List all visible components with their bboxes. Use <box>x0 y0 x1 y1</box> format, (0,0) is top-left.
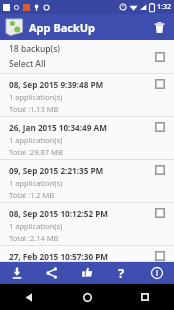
button[interactable]: Rate app <box>69 262 104 284</box>
button[interactable]: 26, Jan 2015 10:34:49 AM <box>0 117 174 160</box>
button[interactable]: Help <box>104 262 139 284</box>
staticText: 26, Jan 2015 10:34:49 AM <box>9 122 107 133</box>
staticText: ? <box>118 264 125 282</box>
button[interactable]: 09, Sep 2015 2:21:35 PM <box>0 160 174 203</box>
staticText: Total :2.14 MB <box>9 233 59 243</box>
staticText: 1 application(s) <box>9 221 63 231</box>
staticText: 09, Sep 2015 2:21:35 PM <box>9 165 104 176</box>
button[interactable]: Delete backups <box>148 16 170 38</box>
button[interactable]: Back <box>0 284 58 310</box>
staticText: 1:32 <box>157 2 171 12</box>
staticText: App BackUp <box>29 20 96 35</box>
button[interactable]: Home <box>58 284 116 310</box>
staticText: Total :1.2 MB <box>9 190 55 200</box>
button[interactable]: 27, Feb 2015 10:57:30 PM <box>0 246 174 262</box>
button[interactable]: Backup now <box>0 262 34 284</box>
staticText: 08, Sep 2015 10:12:52 PM <box>9 208 109 219</box>
button[interactable]: Recent apps <box>116 284 174 310</box>
staticText: Select All <box>9 58 46 70</box>
button[interactable]: 08, Sep 2015 9:39:48 PM <box>0 74 174 117</box>
staticText: Total :1.13 MB <box>9 104 59 114</box>
staticText: 18 backup(s) <box>9 43 61 55</box>
button[interactable]: About <box>139 262 174 284</box>
staticText: Total :29.87 MB <box>9 147 63 157</box>
staticText: 1 application(s) <box>9 92 63 102</box>
button[interactable]: Share <box>34 262 69 284</box>
staticText: 1 application(s) <box>9 178 63 188</box>
staticText: 27, Feb 2015 10:57:30 PM <box>9 251 109 261</box>
staticText: 1 application(s) <box>9 135 63 145</box>
button[interactable]: 18 backup(s) <box>0 40 174 73</box>
button[interactable]: 08, Sep 2015 10:12:52 PM <box>0 203 174 246</box>
staticText: 08, Sep 2015 9:39:48 PM <box>9 79 104 90</box>
